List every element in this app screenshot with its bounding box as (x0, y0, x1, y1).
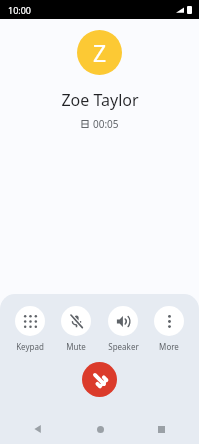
staticText: More (159, 341, 179, 352)
staticText: Speaker (108, 341, 139, 352)
button[interactable]: Keypad (8, 306, 52, 352)
staticText: Z (93, 37, 107, 68)
staticText: Keypad (16, 341, 44, 352)
staticText: Mute (66, 341, 86, 352)
button[interactable]: Home (88, 417, 112, 441)
staticText: 10:00 (8, 4, 32, 16)
button[interactable]: More (147, 306, 191, 352)
button[interactable]: Mute (54, 306, 98, 352)
staticText: Zoe Taylor (61, 89, 139, 111)
button[interactable]: End call (82, 362, 117, 397)
button[interactable]: Back (26, 417, 50, 441)
button[interactable]: Speaker (101, 306, 145, 352)
staticText: 00:05 (93, 117, 119, 131)
button[interactable]: Recent apps (149, 417, 173, 441)
